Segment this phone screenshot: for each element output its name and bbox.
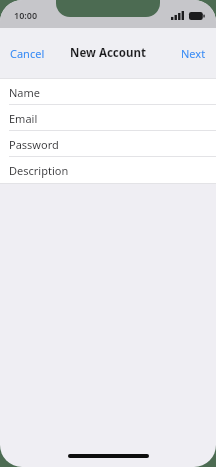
staticText: Name (9, 85, 41, 100)
button[interactable]: Next (171, 38, 216, 69)
staticText: Next (181, 46, 206, 61)
staticText: Password (9, 137, 59, 152)
button[interactable]: Password (0, 131, 216, 157)
staticText: 10:00 (14, 9, 38, 21)
button[interactable]: Name (0, 79, 216, 105)
button[interactable]: Cancel (0, 38, 55, 69)
staticText: Description (9, 163, 69, 178)
staticText: New Account (70, 45, 146, 61)
staticText: Cancel (10, 46, 45, 61)
other: Home indicator (68, 454, 149, 458)
staticText: Email (9, 111, 38, 126)
button[interactable]: Email (0, 105, 216, 131)
button[interactable]: Description (0, 157, 216, 183)
